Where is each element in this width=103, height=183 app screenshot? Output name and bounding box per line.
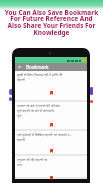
staticText: कहानी xyxy=(17,77,26,82)
button[interactable]: एक पुस्तकों में लिखित कहानी जो आपको प... xyxy=(15,131,87,154)
button[interactable]: Back xyxy=(18,65,22,69)
staticText: सुखी के बिना विश्वास नहीं है शांति की xyxy=(17,72,63,77)
staticText: भाग xyxy=(17,162,23,167)
button[interactable]: हनुमान जी की कहानी का xyxy=(15,156,87,177)
button[interactable]: Back xyxy=(15,63,87,71)
staticText: भगवान के बारे में जानने की पवित्रता xyxy=(17,103,61,108)
button[interactable]: भगवान के बारे में जानने की पवित्रता xyxy=(15,102,87,129)
staticText: कहानी xyxy=(17,137,26,142)
staticText: पूर्ण xyxy=(17,113,22,118)
staticText: Bookmark xyxy=(26,64,49,70)
button[interactable]: सुखी के बिना विश्वास नहीं है शांति की xyxy=(15,71,87,100)
staticText: पूर्ण कहानी के बारे में जानकारी xyxy=(17,108,54,113)
staticText: हनुमान जी की कहानी का xyxy=(17,157,48,162)
staticText: You Can Also Save Bookmark For Future Re… xyxy=(0,8,103,37)
staticText: एक पुस्तकों में लिखित कहानी जो आपको प... xyxy=(17,132,73,137)
